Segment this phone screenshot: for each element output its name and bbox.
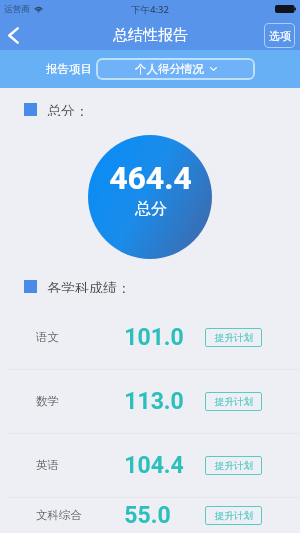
staticText: 运营商 — [4, 4, 30, 15]
button[interactable]: 提升计划 — [205, 392, 262, 411]
button[interactable]: 返回 — [0, 20, 26, 50]
button[interactable]: 数学 — [0, 369, 300, 433]
staticText: 个人得分情况 — [135, 62, 204, 76]
staticText: 提升计划 — [215, 510, 253, 522]
staticText: 提升计划 — [215, 396, 253, 408]
staticText: 提升计划 — [215, 332, 253, 344]
button[interactable]: 提升计划 — [205, 506, 262, 525]
button[interactable]: 语文 — [0, 305, 300, 369]
button[interactable]: 个人得分情况 — [96, 58, 255, 80]
staticText: 104.4 — [124, 452, 184, 479]
staticText: 各学科成绩： — [47, 280, 131, 293]
staticText: 总结性报告 — [113, 26, 188, 45]
staticText: 英语 — [36, 458, 59, 472]
staticText: 55.0 — [124, 502, 171, 529]
button[interactable]: 英语 — [0, 433, 300, 497]
button[interactable]: 提升计划 — [205, 328, 262, 347]
staticText: 464.4 — [109, 159, 192, 197]
staticText: 提升计划 — [215, 460, 253, 472]
staticText: 报告项目 — [46, 62, 92, 76]
staticText: 113.0 — [124, 388, 184, 415]
staticText: 文科综合 — [36, 508, 82, 522]
button[interactable]: 提升计划 — [205, 456, 262, 475]
button[interactable]: 文科综合 — [0, 497, 300, 533]
staticText: 选项 — [269, 29, 291, 43]
staticText: 数学 — [36, 394, 59, 408]
staticText: 下午4:32 — [131, 3, 169, 16]
staticText: 101.0 — [124, 324, 184, 351]
staticText: 语文 — [36, 330, 59, 344]
staticText: 总分： — [47, 103, 89, 116]
staticText: 总分 — [135, 199, 167, 219]
button[interactable]: 选项 — [264, 23, 295, 48]
